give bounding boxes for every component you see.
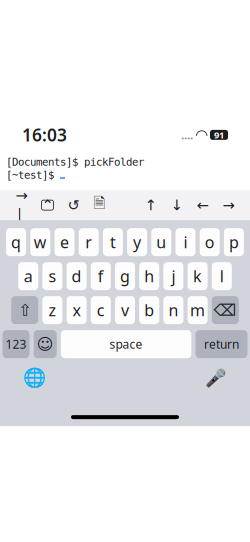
button[interactable]: j bbox=[163, 262, 183, 290]
button[interactable]: space bbox=[61, 330, 191, 358]
staticText: s bbox=[48, 265, 56, 287]
staticText: g bbox=[120, 265, 130, 287]
staticText: .... bbox=[181, 127, 193, 143]
button[interactable]: f bbox=[91, 262, 111, 290]
button[interactable]: m bbox=[188, 296, 208, 324]
button[interactable]: r bbox=[79, 228, 99, 256]
button[interactable]: u bbox=[151, 228, 171, 256]
staticText: c bbox=[97, 299, 105, 321]
button[interactable]: h bbox=[139, 262, 159, 290]
button[interactable]: a bbox=[18, 262, 38, 290]
button[interactable]: Numbers bbox=[2, 330, 29, 358]
button[interactable]: Delete bbox=[212, 296, 239, 324]
button[interactable]: k bbox=[188, 262, 208, 290]
staticText: b bbox=[144, 299, 154, 321]
staticText: u bbox=[156, 231, 166, 253]
button[interactable]: y bbox=[127, 228, 147, 256]
staticText: ← bbox=[196, 197, 208, 213]
staticText: →| bbox=[15, 187, 27, 223]
button[interactable]: l bbox=[212, 262, 232, 290]
button[interactable]: Tab bbox=[14, 198, 29, 213]
staticText: ☺ bbox=[37, 335, 54, 353]
staticText: [~test]$ bbox=[6, 169, 60, 181]
button[interactable]: Dictation bbox=[204, 366, 228, 390]
button[interactable]: v bbox=[115, 296, 135, 324]
staticText: m bbox=[190, 299, 205, 321]
button[interactable]: e bbox=[54, 228, 74, 256]
staticText: h bbox=[144, 265, 154, 287]
staticText: j bbox=[171, 265, 175, 287]
button[interactable]: c bbox=[91, 296, 111, 324]
staticText: a bbox=[24, 265, 33, 287]
staticText: i bbox=[183, 231, 187, 253]
button[interactable]: Paste bbox=[92, 198, 107, 213]
staticText: t bbox=[110, 231, 116, 253]
staticText: [Documents]$ pickFolder bbox=[6, 156, 144, 168]
button[interactable]: s bbox=[42, 262, 62, 290]
staticText: ↓ bbox=[170, 197, 182, 213]
staticText: e bbox=[60, 231, 69, 253]
staticText: q bbox=[11, 231, 21, 253]
staticText: 🌐 bbox=[22, 367, 45, 389]
button[interactable]: o bbox=[200, 228, 220, 256]
button[interactable]: b bbox=[139, 296, 159, 324]
button[interactable]: d bbox=[67, 262, 87, 290]
button[interactable]: q bbox=[6, 228, 26, 256]
staticText: ⌃ bbox=[41, 197, 53, 213]
staticText: ↑ bbox=[144, 197, 156, 213]
button[interactable]: z bbox=[42, 296, 62, 324]
button[interactable]: n bbox=[163, 296, 183, 324]
staticText: return bbox=[204, 336, 239, 352]
staticText: → bbox=[222, 197, 234, 213]
staticText: 123 bbox=[5, 336, 26, 352]
staticText: ⇧ bbox=[18, 301, 31, 319]
staticText: 🗎 bbox=[93, 193, 105, 217]
button[interactable]: Shift bbox=[11, 296, 38, 324]
staticText: x bbox=[73, 299, 81, 321]
staticText: v bbox=[121, 299, 129, 321]
staticText: 16:03 bbox=[22, 123, 67, 146]
staticText: r bbox=[85, 231, 92, 253]
button[interactable]: t bbox=[103, 228, 123, 256]
button[interactable]: p bbox=[224, 228, 244, 256]
button[interactable]: w bbox=[30, 228, 50, 256]
button[interactable]: Left bbox=[195, 198, 210, 213]
staticText: l bbox=[220, 265, 224, 287]
staticText: w bbox=[34, 231, 47, 253]
button[interactable]: History bbox=[66, 198, 81, 213]
button[interactable]: Up bbox=[143, 198, 158, 213]
staticText: ↺ bbox=[67, 197, 79, 213]
staticText: p bbox=[229, 231, 239, 253]
staticText: ⌫ bbox=[214, 301, 237, 319]
button[interactable]: g bbox=[115, 262, 135, 290]
staticText: 🎤 bbox=[205, 368, 227, 388]
button[interactable]: Right bbox=[221, 198, 236, 213]
button[interactable]: Emoji bbox=[34, 330, 57, 358]
staticText: f bbox=[98, 265, 104, 287]
staticText: space bbox=[110, 336, 143, 352]
staticText: n bbox=[168, 299, 178, 321]
staticText: d bbox=[72, 265, 82, 287]
staticText: y bbox=[133, 231, 141, 253]
staticText: ◠ bbox=[196, 127, 207, 143]
staticText: k bbox=[193, 265, 202, 287]
staticText: o bbox=[205, 231, 215, 253]
button[interactable]: Down bbox=[169, 198, 184, 213]
button[interactable]: Change keyboard bbox=[22, 366, 46, 390]
staticText: z bbox=[48, 299, 56, 321]
button[interactable]: Control bbox=[40, 198, 55, 213]
button[interactable]: return bbox=[195, 330, 247, 358]
staticText: 91 bbox=[214, 129, 224, 141]
button[interactable]: x bbox=[67, 296, 87, 324]
button[interactable]: i bbox=[175, 228, 195, 256]
